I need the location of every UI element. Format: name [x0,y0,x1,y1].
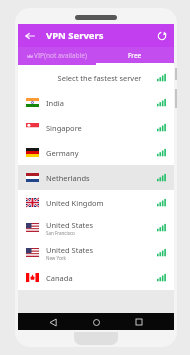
staticText: Singapore [46,123,82,133]
button[interactable]: India [18,90,174,115]
staticText: VIP(not available) [34,51,87,60]
staticText: San Francisco [46,230,75,236]
button[interactable]: Select the fastest server [18,65,174,90]
staticText: Select the fastest server [42,73,157,83]
button[interactable]: Back [45,314,61,330]
button[interactable]: United States [18,240,174,265]
staticText: Canada [46,273,73,283]
button[interactable]: Back [20,26,40,46]
staticText: United Kingdom [46,198,104,208]
button[interactable]: Singapore [18,115,174,140]
staticText: Germany [46,148,79,158]
staticText: Netherlands [46,173,90,183]
staticText: Free [128,51,142,60]
button[interactable]: Netherlands [18,165,174,190]
button[interactable]: United States [18,215,174,240]
button[interactable]: Canada [18,265,174,290]
button[interactable]: United Kingdom [18,190,174,215]
button[interactable]: Free [96,47,174,63]
staticText: India [46,98,64,108]
staticText: United States [46,245,94,255]
button[interactable]: Recent apps [131,314,147,330]
staticText: United States [46,220,94,230]
staticText: New York [46,255,66,261]
button[interactable]: Germany [18,140,174,165]
staticText: VPN Servers [46,29,104,42]
button[interactable]: Refresh [152,26,172,46]
button[interactable]: VIP(not available) [18,47,96,63]
button[interactable]: Home [88,314,104,330]
